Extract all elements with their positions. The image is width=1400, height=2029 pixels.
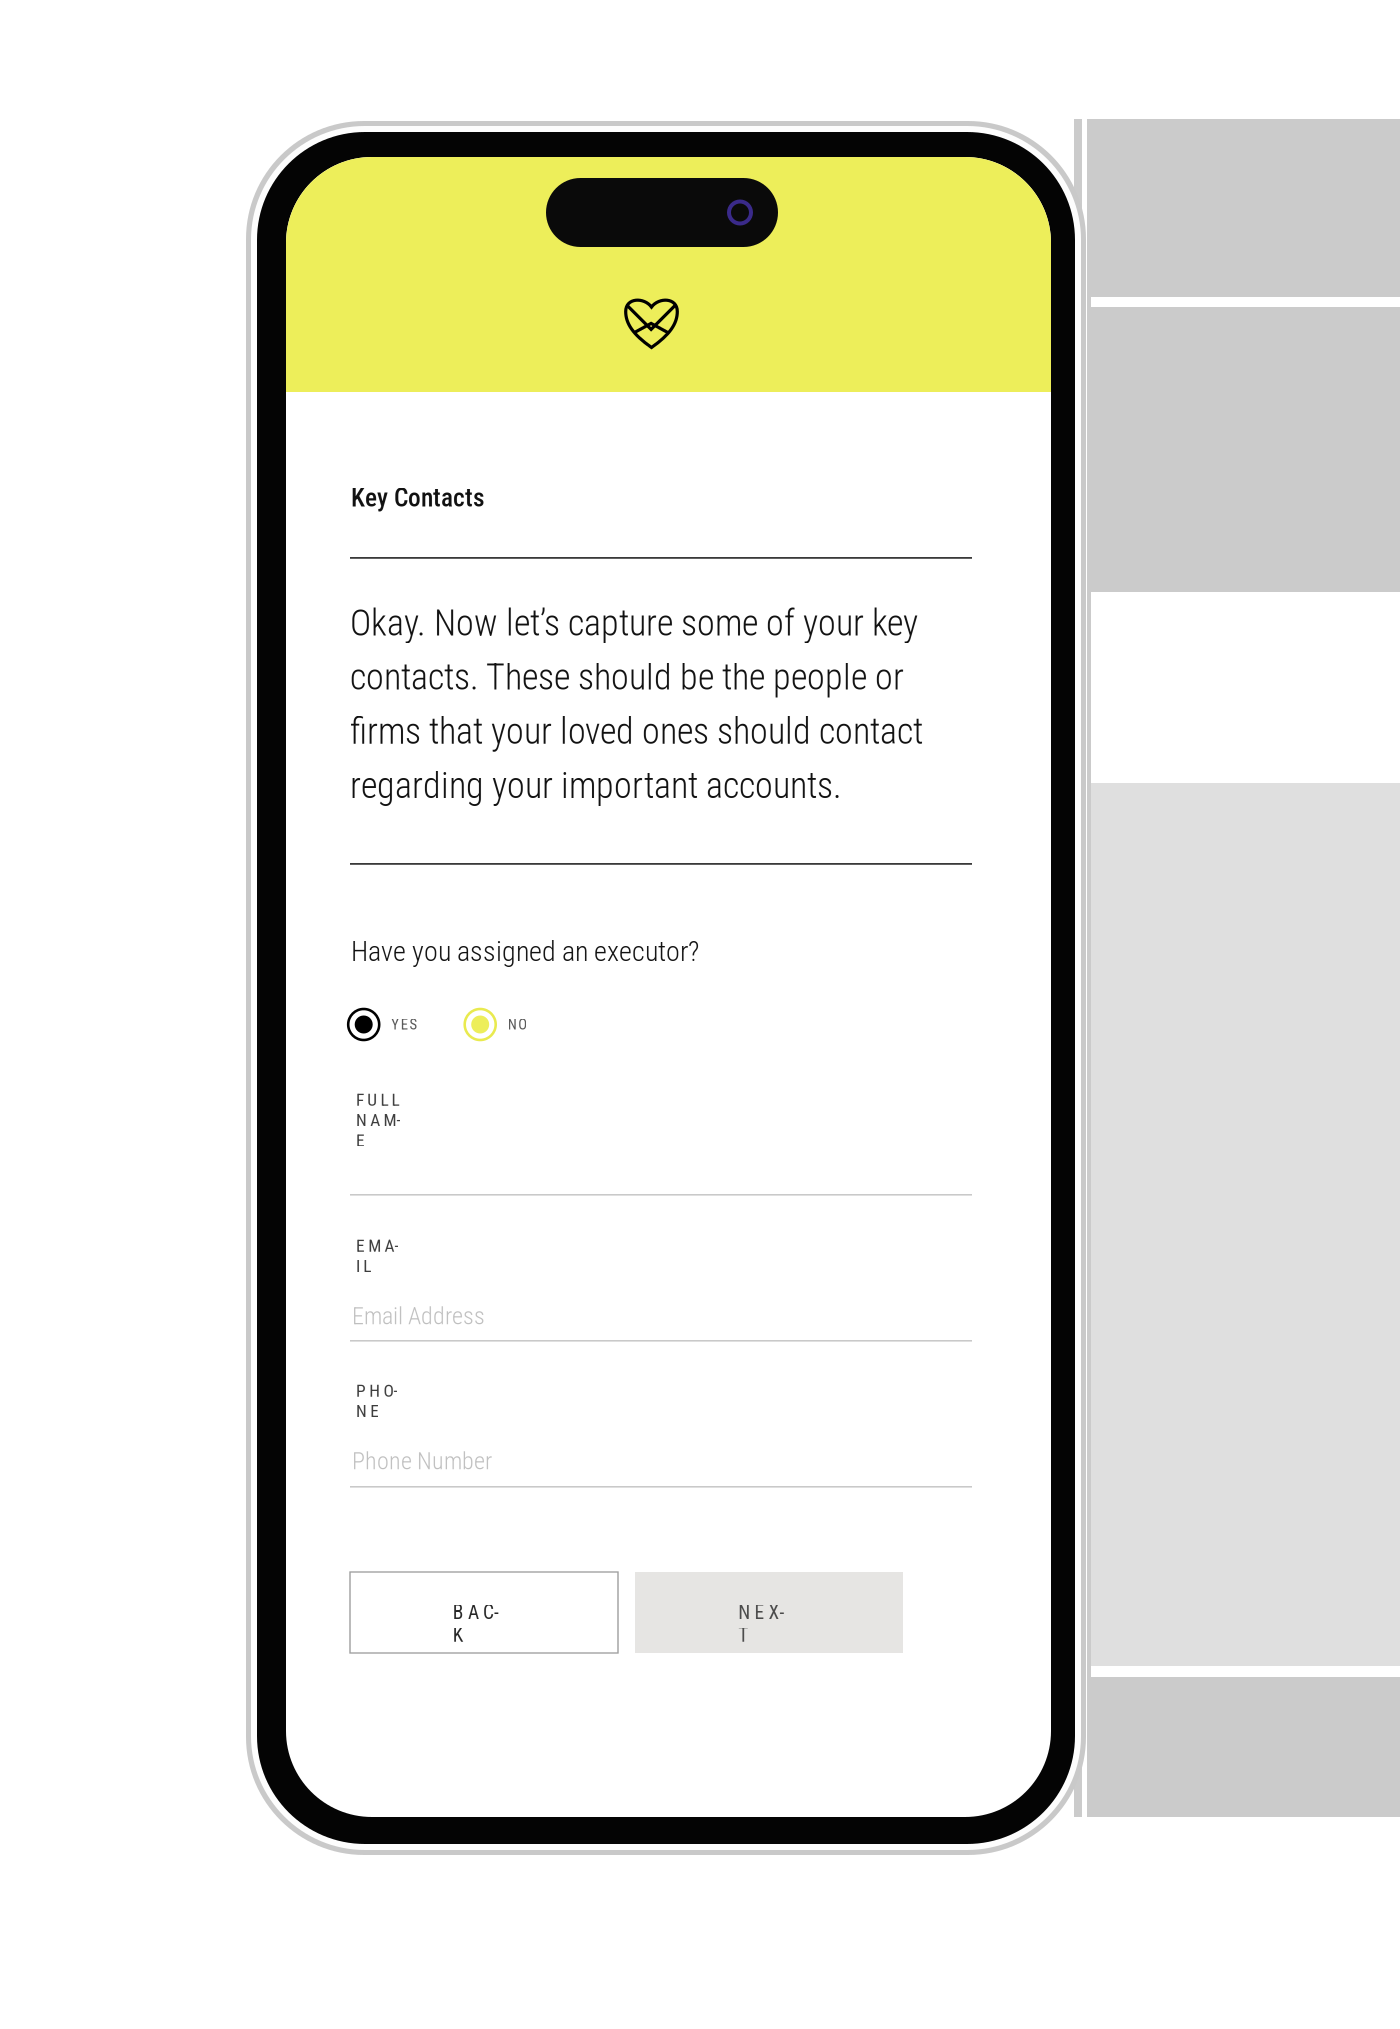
staticText: Email Address — [352, 1302, 485, 1330]
staticText: PHONE — [356, 1381, 412, 1421]
staticText: YES — [391, 1016, 417, 1033]
staticText: NEXT — [738, 1601, 794, 1624]
staticText: Okay. Now let’s capture some of your key… — [350, 602, 923, 807]
staticText: Phone Number — [352, 1447, 492, 1475]
button[interactable]: NEXT — [635, 1572, 903, 1653]
button[interactable]: YES — [348, 1009, 417, 1040]
button[interactable]: NO — [465, 1009, 527, 1040]
staticText: Have you assigned an executor? — [351, 935, 699, 968]
staticText: NO — [508, 1016, 527, 1033]
staticText: FULL NAME — [356, 1090, 409, 1130]
button[interactable]: BACK — [350, 1572, 618, 1653]
staticText: EMAIL — [356, 1236, 406, 1276]
staticText: BACK — [453, 1601, 509, 1624]
staticText: Key Contacts — [351, 483, 485, 513]
